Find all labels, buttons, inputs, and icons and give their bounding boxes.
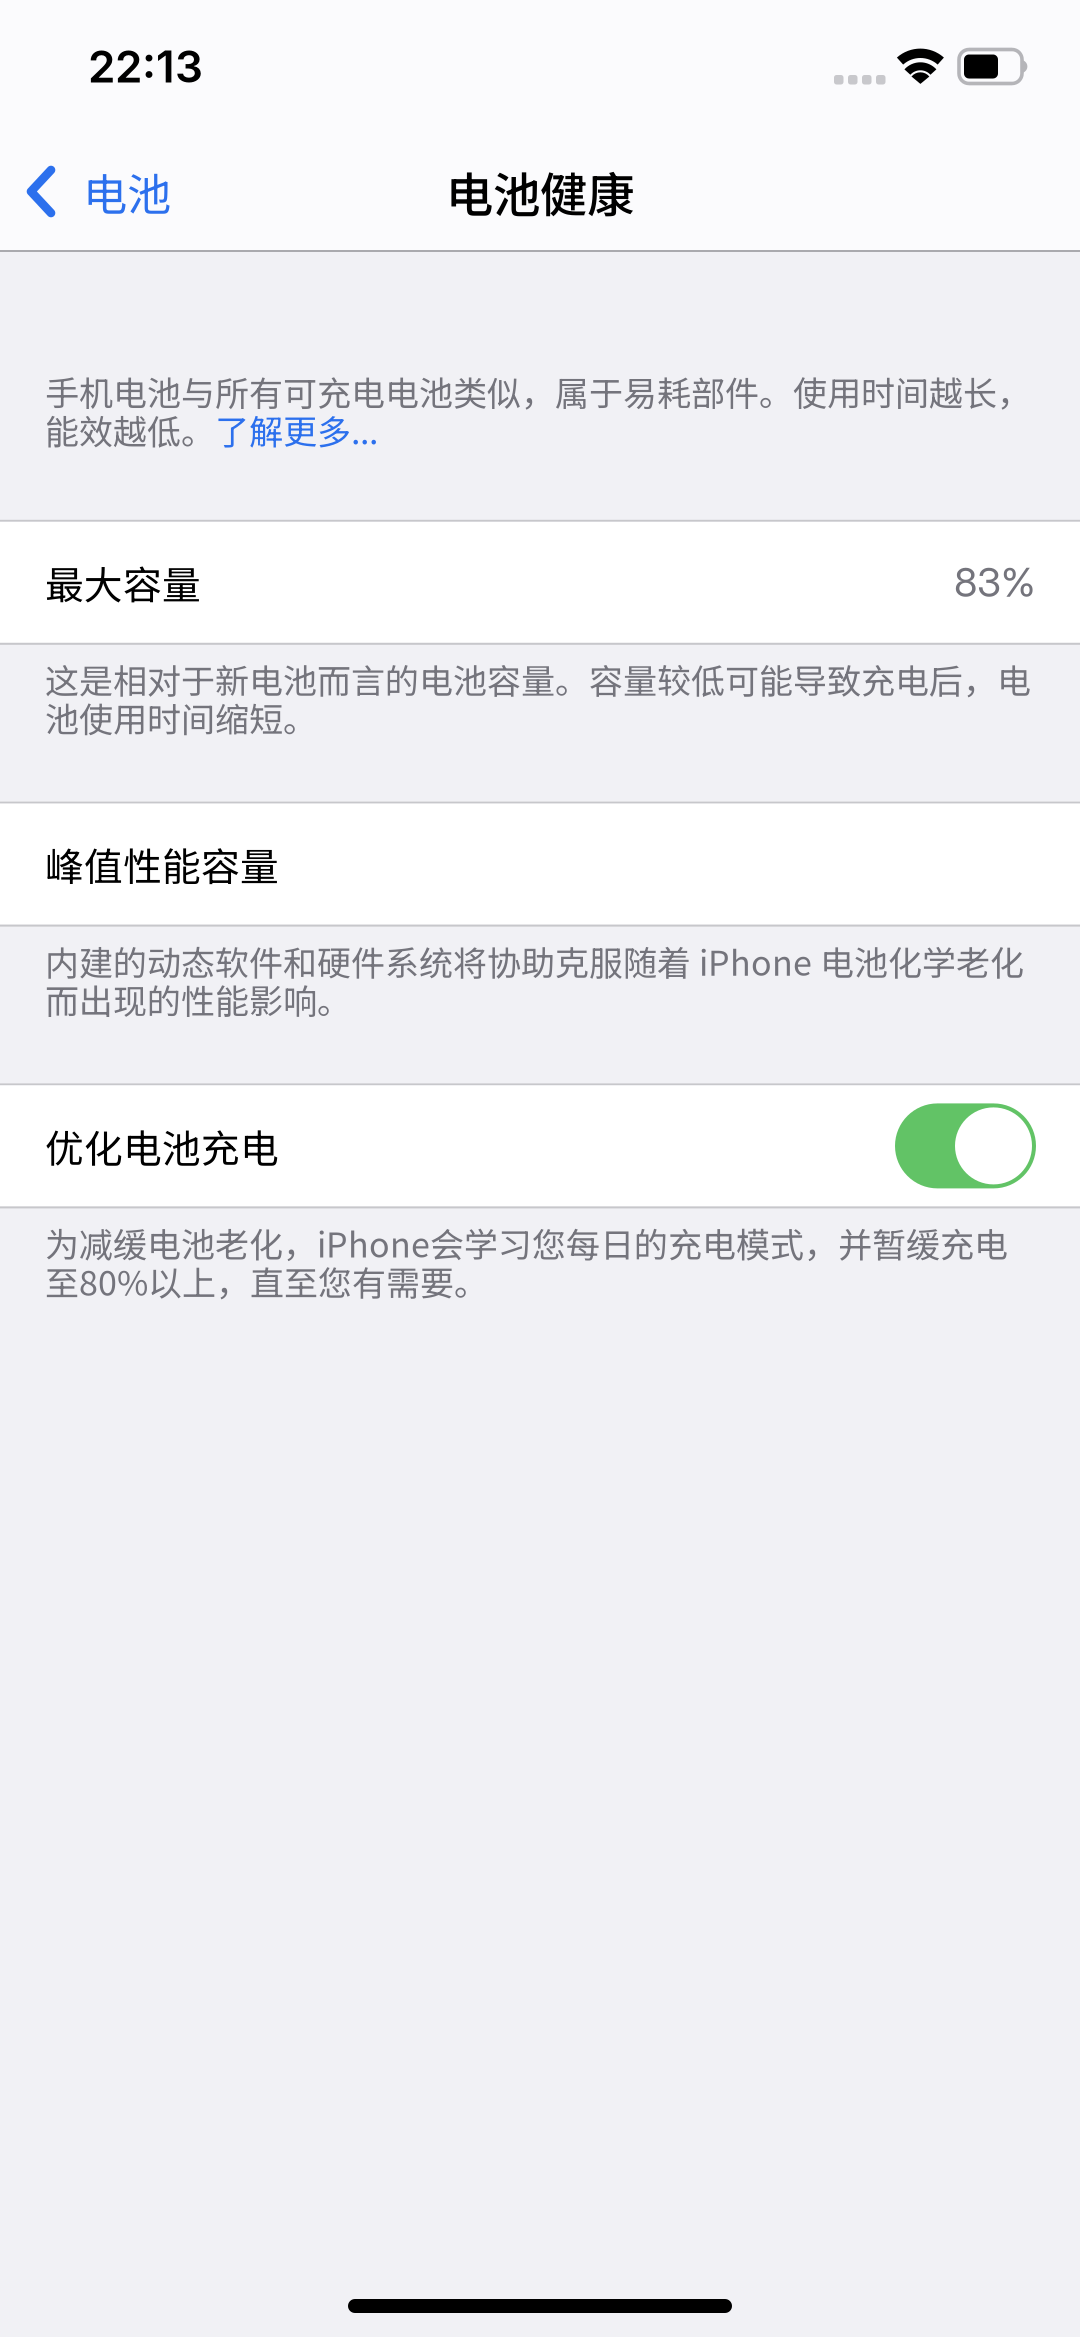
button[interactable]: 了解更多...	[215, 410, 378, 449]
staticText: 优化电池充电	[45, 1118, 279, 1174]
staticText: 最大容量	[45, 554, 201, 610]
button[interactable]: 优化电池充电	[895, 1103, 1036, 1188]
staticText: 手机电池与所有可充电电池类似，属于易耗部件。使用时间越长，	[45, 372, 1031, 410]
staticText: 83%	[954, 558, 1035, 606]
staticText: 电池健康	[446, 157, 634, 226]
staticText: 峰值性能容量	[45, 836, 279, 892]
button[interactable]: 电池	[0, 133, 195, 249]
staticText: 这是相对于新电池而言的电池容量。容量较低可能导致充电后，电 池使用时间缩短。	[45, 660, 1031, 737]
staticText: 了解更多...	[215, 410, 378, 449]
staticText: 能效越低。	[45, 410, 215, 449]
staticText: 电池	[83, 160, 171, 223]
staticText: 22:13	[88, 40, 203, 93]
staticText: 内建的动态软件和硬件系统将协助克服随着 iPhone 电池化学老化 而出现的性能…	[45, 942, 1024, 1018]
staticText: 为减缓电池老化，iPhone会学习您每日的充电模式，并暂缓充电 至80%以上，直…	[45, 1223, 1008, 1300]
